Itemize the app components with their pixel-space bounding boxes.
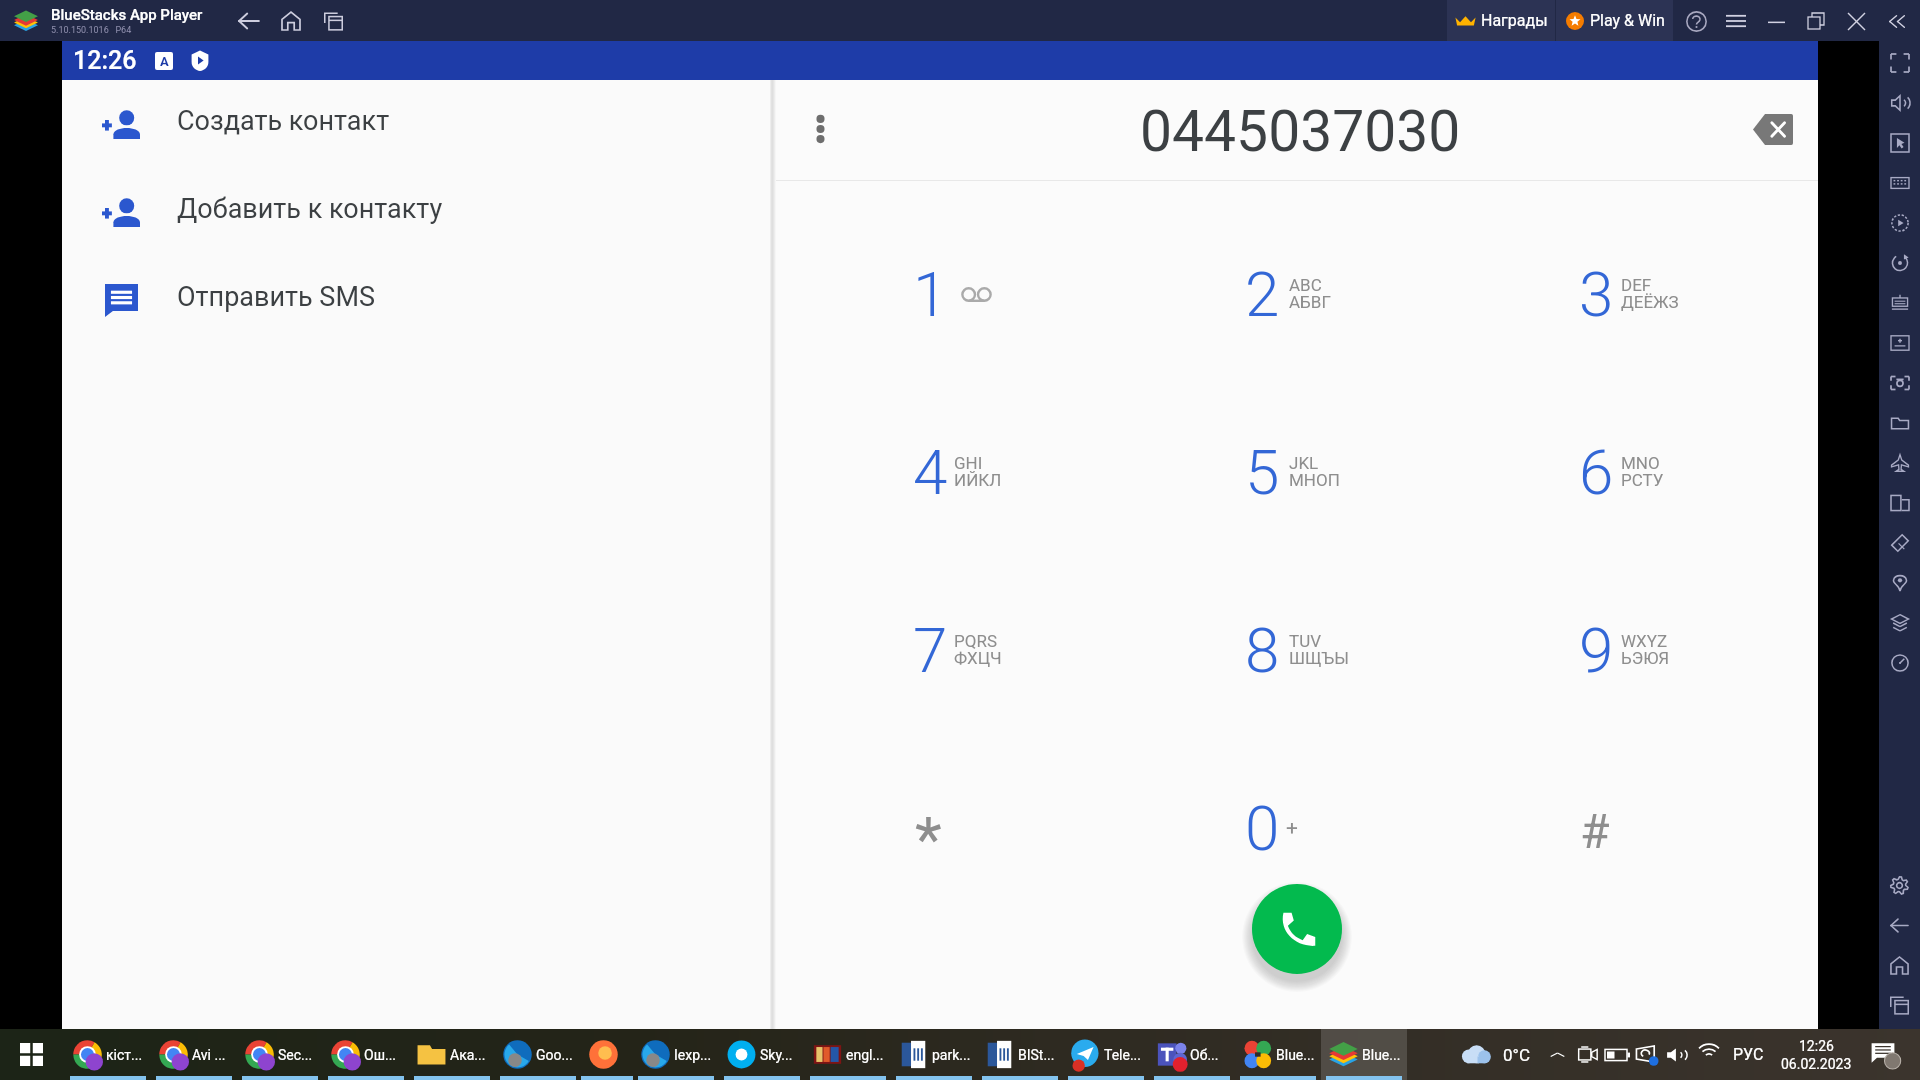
button[interactable]: кіст... <box>65 1029 151 1080</box>
button[interactable]: Menu <box>1716 1 1756 41</box>
button[interactable]: Settings <box>1879 865 1920 905</box>
button[interactable]: Call <box>1252 884 1342 974</box>
button[interactable]: Eco mode <box>1879 443 1920 483</box>
button[interactable]: park... <box>891 1029 977 1080</box>
button[interactable]: 9 <box>1514 578 1814 722</box>
button[interactable]: # <box>1514 756 1814 900</box>
staticText: * <box>915 803 942 876</box>
button[interactable]: Home <box>271 1 311 41</box>
staticText: park... <box>932 1047 971 1063</box>
button[interactable]: Ош... <box>323 1029 409 1080</box>
button[interactable]: 12:26 <box>1775 1029 1857 1080</box>
button[interactable]: Shake <box>1879 523 1920 563</box>
button[interactable]: Blue... <box>1235 1029 1321 1080</box>
button[interactable]: Display <box>1631 1029 1663 1080</box>
button[interactable]: engl... <box>805 1029 891 1080</box>
button[interactable]: Recents <box>313 1 353 41</box>
staticText: ФХЦЧ <box>954 648 1002 668</box>
button[interactable]: Network <box>1694 1029 1724 1080</box>
button[interactable]: 7 <box>848 578 1148 722</box>
button[interactable]: Screenshot <box>1879 363 1920 403</box>
button[interactable]: Backspace <box>1726 80 1818 181</box>
button[interactable]: Layers <box>1879 603 1920 643</box>
button[interactable]: Start <box>6 1029 57 1080</box>
button[interactable]: 2 <box>1180 222 1480 366</box>
staticText: A <box>160 54 169 69</box>
button[interactable]: Fullscreen <box>1879 43 1920 83</box>
staticText: # <box>1580 803 1610 859</box>
staticText: DEF <box>1621 275 1652 295</box>
button[interactable]: Performance <box>1879 643 1920 683</box>
button[interactable]: Keyboard <box>1879 163 1920 203</box>
button[interactable]: * <box>848 756 1148 900</box>
button[interactable]: Volume <box>1662 1029 1692 1080</box>
staticText: 12:26 <box>1799 1038 1834 1054</box>
staticText: Sky... <box>760 1047 793 1063</box>
button[interactable]: Media manager <box>1879 403 1920 443</box>
button[interactable]: Blue... <box>1321 1029 1407 1080</box>
button[interactable]: Show hidden icons <box>1541 1029 1573 1080</box>
staticText: ШЩЪЫ <box>1289 648 1350 668</box>
button[interactable]: 0 <box>1180 756 1480 900</box>
button[interactable]: Отправить SMS <box>62 256 770 344</box>
button[interactable]: Help <box>1676 1 1716 41</box>
button[interactable]: 4 <box>848 400 1148 544</box>
button[interactable]: Camera <box>1572 1029 1602 1080</box>
button[interactable]: Avi ... <box>151 1029 237 1080</box>
staticText: ЬЭЮЯ <box>1621 648 1670 668</box>
button[interactable]: Создать контакт <box>62 80 770 168</box>
button[interactable]: Close <box>1836 1 1876 41</box>
button[interactable]: 3 <box>1514 222 1814 366</box>
staticText: 3 <box>1579 258 1614 331</box>
button[interactable]: Notifications <box>1864 1029 1908 1080</box>
button[interactable]: Collapse <box>1876 1 1916 41</box>
button[interactable]: Location <box>1879 563 1920 603</box>
button[interactable]: Maximize <box>1796 1 1836 41</box>
staticText: 12:26 <box>73 46 137 75</box>
button[interactable]: 5 <box>1180 400 1480 544</box>
button[interactable]: 0°C <box>1496 1029 1536 1080</box>
button[interactable]: Ака... <box>409 1029 495 1080</box>
staticText: PQRS <box>954 631 997 651</box>
button[interactable]: Minimize <box>1756 1 1796 41</box>
button[interactable]: Battery <box>1601 1029 1633 1080</box>
button[interactable] <box>581 1029 633 1080</box>
button[interactable]: Iexp... <box>633 1029 719 1080</box>
button[interactable]: OneDrive <box>1455 1029 1497 1080</box>
staticText: АБВГ <box>1289 292 1331 312</box>
button[interactable]: Install APK <box>1879 323 1920 363</box>
button[interactable]: Tele... <box>1063 1029 1149 1080</box>
button[interactable]: Multi instance <box>1879 483 1920 523</box>
button[interactable]: 6 <box>1514 400 1814 544</box>
button[interactable]: Pointer <box>1879 123 1920 163</box>
button[interactable]: Volume <box>1879 83 1920 123</box>
button[interactable]: Recents <box>1879 985 1920 1025</box>
button[interactable]: More options <box>776 80 864 181</box>
button[interactable]: Macro <box>1879 283 1920 323</box>
button[interactable]: Награды <box>1447 0 1555 41</box>
button[interactable]: Rotate <box>1879 243 1920 283</box>
staticText: Награды <box>1481 11 1548 30</box>
button[interactable]: Goo... <box>495 1029 581 1080</box>
button[interactable]: 8 <box>1180 578 1480 722</box>
button[interactable]: Sky... <box>719 1029 805 1080</box>
staticText: Blue... <box>1362 1047 1401 1063</box>
button[interactable]: Добавить к контакту <box>62 168 770 256</box>
button[interactable]: Record <box>1879 203 1920 243</box>
button[interactable]: Back <box>1879 905 1920 945</box>
staticText: 0 <box>1245 792 1280 865</box>
button[interactable]: РУС <box>1729 1029 1767 1080</box>
button[interactable]: 1 <box>848 222 1148 366</box>
staticText: Tele... <box>1104 1047 1142 1063</box>
button[interactable]: Back <box>229 1 269 41</box>
button[interactable]: Об... <box>1149 1029 1235 1080</box>
button[interactable]: Play & Win <box>1556 0 1673 41</box>
button[interactable]: Sec... <box>237 1029 323 1080</box>
staticText: engl... <box>846 1047 884 1063</box>
staticText: РУС <box>1733 1045 1764 1064</box>
staticText: BlueStacks App Player <box>51 6 203 24</box>
button[interactable]: BISt... <box>977 1029 1063 1080</box>
button[interactable]: Home <box>1879 945 1920 985</box>
staticText: 0°C <box>1503 1045 1530 1065</box>
staticText: Ош... <box>364 1047 397 1063</box>
